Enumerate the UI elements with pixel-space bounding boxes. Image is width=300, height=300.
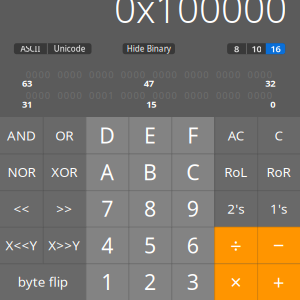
staticText: 0: [203, 89, 208, 102]
staticText: 0: [184, 68, 189, 81]
button[interactable]: ASCII: [14, 43, 47, 54]
button[interactable]: 10: [247, 43, 266, 54]
staticText: 0: [38, 68, 43, 81]
staticText: 0: [140, 68, 145, 81]
staticText: 0: [222, 68, 227, 81]
button[interactable]: NOR: [0, 154, 43, 190]
staticText: OR: [55, 126, 73, 144]
button[interactable]: Unicode: [48, 43, 91, 54]
button[interactable]: byte flip: [0, 263, 86, 300]
button[interactable]: −: [257, 227, 300, 263]
staticText: 0: [133, 89, 138, 102]
staticText: 0: [254, 89, 259, 102]
button[interactable]: RoR: [257, 154, 300, 190]
staticText: ×: [230, 268, 241, 295]
staticText: RoL: [224, 163, 247, 181]
staticText: 0: [190, 68, 195, 81]
button[interactable]: 3: [171, 263, 214, 300]
staticText: 0: [159, 68, 164, 81]
button[interactable]: 1: [86, 263, 129, 300]
staticText: 1: [101, 267, 113, 296]
staticText: 5: [144, 231, 156, 259]
button[interactable]: D: [86, 117, 129, 154]
staticText: 0: [95, 89, 100, 102]
staticText: 0: [57, 68, 62, 81]
staticText: C: [275, 126, 283, 144]
staticText: C: [186, 158, 199, 186]
staticText: 0: [140, 89, 145, 102]
staticText: 0: [260, 68, 265, 81]
staticText: 63: [22, 77, 32, 89]
staticText: 0: [64, 68, 69, 81]
button[interactable]: 8: [227, 43, 246, 54]
button[interactable]: 6: [171, 227, 214, 263]
staticText: 0: [229, 68, 234, 81]
staticText: 1's: [270, 200, 287, 217]
staticText: 0: [165, 68, 170, 81]
staticText: 0: [197, 89, 202, 102]
staticText: 0: [260, 89, 265, 102]
button[interactable]: 9: [171, 190, 214, 227]
staticText: 0: [222, 89, 227, 102]
staticText: D: [99, 121, 115, 149]
button[interactable]: A: [86, 154, 129, 190]
button[interactable]: 4: [86, 227, 129, 263]
staticText: 0: [121, 89, 126, 102]
staticText: 0x100000: [114, 0, 287, 34]
button[interactable]: 2: [129, 263, 171, 300]
staticText: 0: [235, 68, 240, 81]
staticText: Hide Binary: [127, 43, 171, 54]
staticText: 9: [187, 194, 199, 223]
staticText: 0: [159, 89, 164, 102]
button[interactable]: 2's: [214, 190, 257, 227]
button[interactable]: AC: [214, 117, 257, 154]
button[interactable]: 16: [266, 43, 285, 54]
button[interactable]: 7: [86, 190, 129, 227]
staticText: 4: [101, 231, 113, 259]
button[interactable]: XOR: [43, 154, 86, 190]
button[interactable]: C: [171, 154, 214, 190]
button[interactable]: ÷: [214, 227, 257, 263]
button[interactable]: ×: [214, 263, 257, 300]
staticText: 0: [121, 68, 126, 81]
staticText: 7: [101, 194, 113, 223]
staticText: 0: [108, 68, 113, 81]
staticText: 0: [216, 68, 221, 81]
staticText: 0: [184, 89, 189, 102]
staticText: 0: [203, 68, 208, 81]
staticText: 0: [190, 89, 195, 102]
button[interactable]: Hide Binary: [123, 43, 175, 54]
button[interactable]: <<: [0, 190, 43, 227]
staticText: RoR: [267, 163, 291, 181]
button[interactable]: 1's: [257, 190, 300, 227]
button[interactable]: OR: [43, 117, 86, 154]
staticText: 16: [270, 42, 280, 55]
staticText: 0: [57, 89, 62, 102]
staticText: NOR: [7, 163, 35, 181]
staticText: 0: [165, 89, 170, 102]
staticText: X>>Y: [48, 236, 80, 254]
staticText: 47: [144, 77, 154, 89]
button[interactable]: E: [129, 117, 171, 154]
staticText: 0: [95, 68, 100, 81]
staticText: A: [100, 158, 114, 186]
staticText: ASCII: [20, 43, 40, 54]
button[interactable]: >>: [43, 190, 86, 227]
button[interactable]: X<<Y: [0, 227, 43, 263]
button[interactable]: F: [171, 117, 214, 154]
button[interactable]: X>>Y: [43, 227, 86, 263]
button[interactable]: AND: [0, 117, 43, 154]
button[interactable]: B: [129, 154, 171, 190]
button[interactable]: RoL: [214, 154, 257, 190]
button[interactable]: 5: [129, 227, 171, 263]
staticText: E: [144, 121, 156, 149]
staticText: 0: [64, 89, 69, 102]
staticText: 10: [251, 42, 261, 55]
staticText: 0: [45, 68, 50, 81]
button[interactable]: 8: [129, 190, 171, 227]
staticText: −: [273, 232, 284, 258]
staticText: 32: [265, 77, 275, 89]
button[interactable]: +: [257, 263, 300, 300]
button[interactable]: C: [257, 117, 300, 154]
staticText: 0: [267, 68, 272, 81]
